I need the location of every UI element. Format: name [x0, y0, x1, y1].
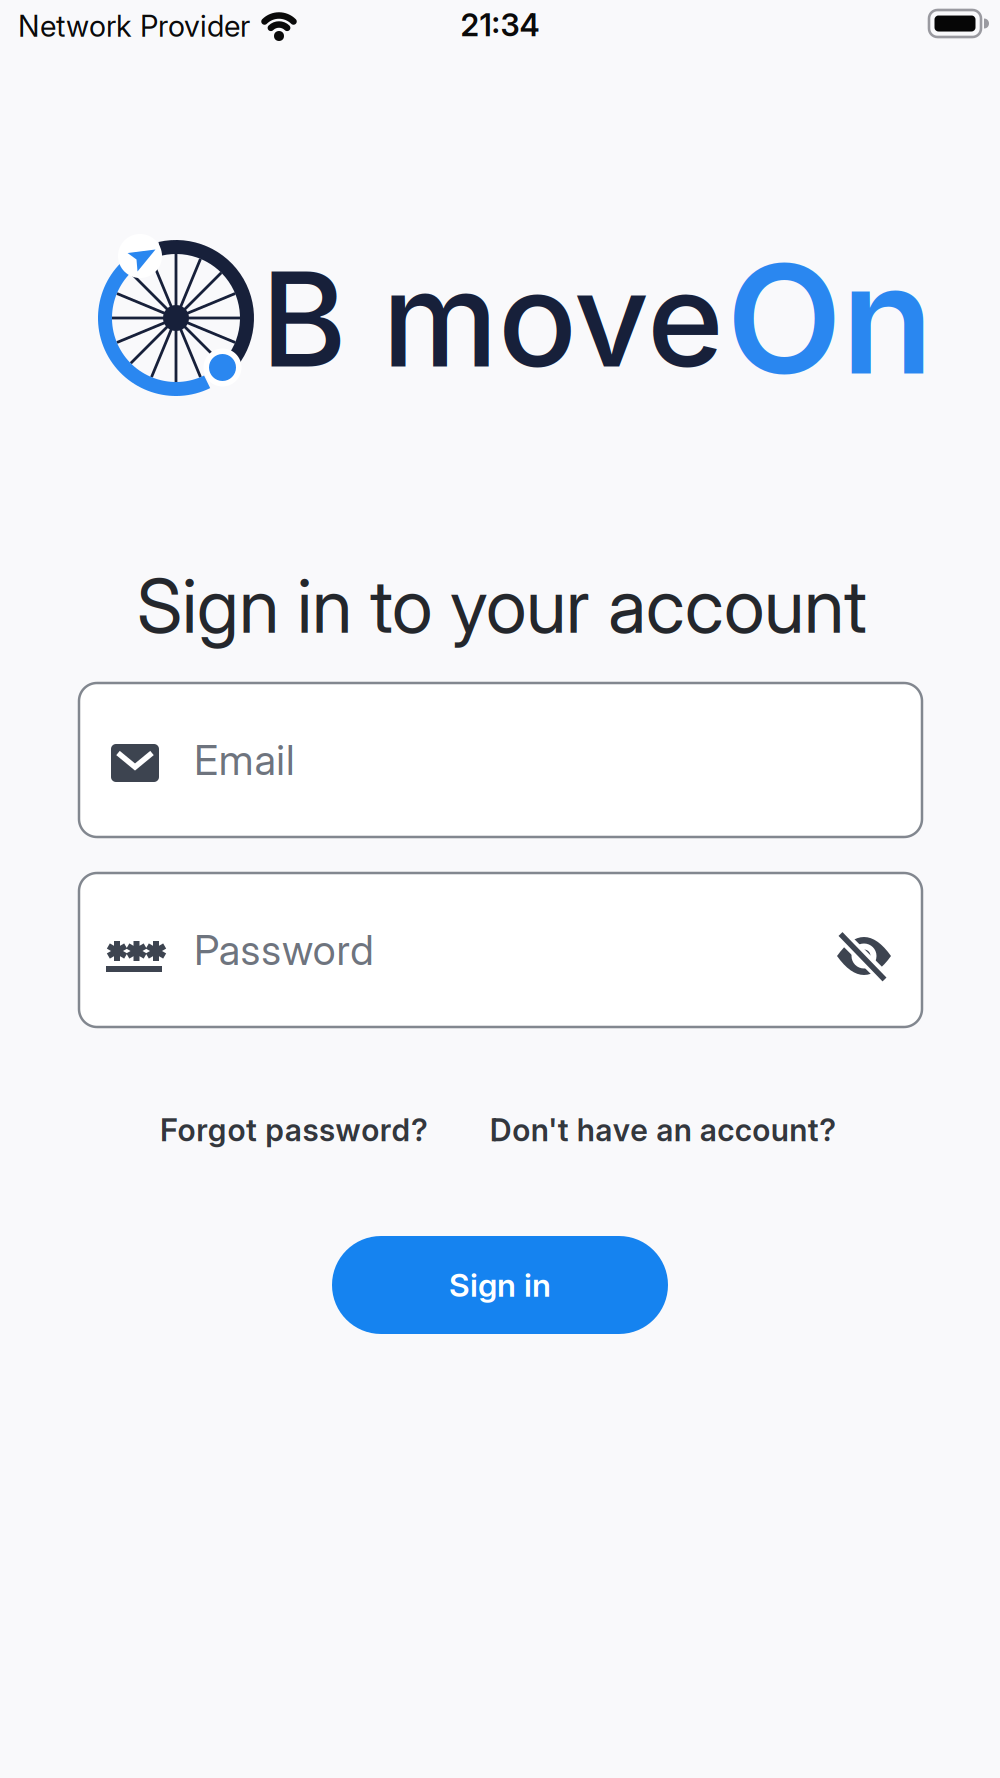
staticText: 21:34	[460, 7, 539, 43]
button[interactable]: Email	[79, 683, 922, 837]
staticText: Forgot password?	[160, 1112, 428, 1148]
button[interactable]: Don't have an account?	[490, 1112, 836, 1148]
button[interactable]: Sign in	[332, 1236, 668, 1334]
staticText: Password	[194, 926, 373, 974]
staticText: Email	[194, 736, 295, 784]
button[interactable]: Password	[79, 873, 922, 1027]
button[interactable]: Show password	[819, 911, 909, 1001]
staticText: Don't have an account?	[490, 1112, 836, 1148]
staticText: Sign in to your account	[137, 561, 867, 651]
staticText: Network Provider	[18, 9, 250, 43]
staticText: B move	[261, 240, 724, 398]
staticText: Sign in	[449, 1266, 551, 1304]
staticText: On	[726, 228, 933, 410]
button[interactable]: Forgot password?	[160, 1112, 428, 1148]
